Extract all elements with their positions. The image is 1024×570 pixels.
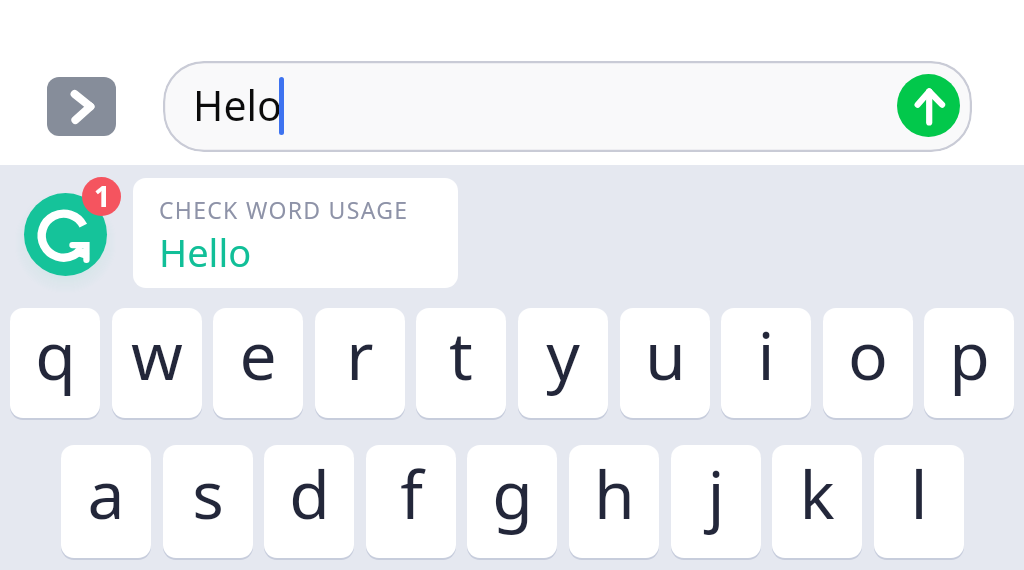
button[interactable]: i — [721, 308, 811, 418]
button[interactable]: e — [213, 308, 303, 418]
button[interactable]: CHECK WORD USAGE — [133, 178, 458, 288]
staticText: g — [492, 448, 533, 538]
button[interactable]: w — [112, 308, 202, 418]
button[interactable]: f — [366, 445, 456, 558]
staticText: w — [131, 309, 183, 399]
staticText: f — [400, 448, 423, 538]
staticText: Helo — [193, 77, 282, 133]
button[interactable]: k — [772, 445, 862, 558]
staticText: p — [949, 309, 990, 399]
staticText: k — [799, 448, 835, 538]
staticText: y — [546, 309, 580, 399]
staticText: d — [289, 448, 330, 538]
button[interactable]: y — [518, 308, 608, 418]
button[interactable]: q — [10, 308, 100, 418]
staticText: a — [87, 448, 125, 538]
button[interactable]: Helo — [163, 61, 972, 152]
staticText: s — [192, 448, 224, 538]
staticText: o — [848, 309, 888, 399]
button[interactable]: u — [620, 308, 710, 418]
button[interactable]: s — [163, 445, 253, 558]
button[interactable]: d — [264, 445, 354, 558]
button[interactable]: t — [416, 308, 506, 418]
staticText: u — [645, 309, 686, 399]
staticText: e — [239, 309, 277, 399]
button[interactable]: h — [569, 445, 659, 558]
staticText: h — [594, 448, 635, 538]
staticText: CHECK WORD USAGE — [159, 194, 409, 225]
button[interactable]: Send — [897, 74, 960, 137]
staticText: j — [707, 448, 725, 538]
button[interactable]: 1 suggestion — [82, 177, 121, 216]
button[interactable]: Grammarly — [24, 193, 107, 276]
button[interactable]: l — [874, 445, 964, 558]
button[interactable]: o — [823, 308, 913, 418]
staticText: q — [35, 309, 76, 399]
button[interactable]: p — [924, 308, 1014, 418]
staticText: l — [910, 448, 928, 538]
staticText: 1 — [94, 177, 111, 215]
staticText: Hello — [159, 226, 252, 278]
button[interactable]: g — [467, 445, 557, 558]
button[interactable]: r — [315, 308, 405, 418]
button[interactable]: Expand — [47, 77, 116, 136]
staticText: i — [757, 309, 775, 399]
button[interactable]: j — [671, 445, 761, 558]
staticText: t — [449, 309, 473, 399]
button[interactable]: a — [61, 445, 151, 558]
staticText: r — [346, 309, 374, 399]
